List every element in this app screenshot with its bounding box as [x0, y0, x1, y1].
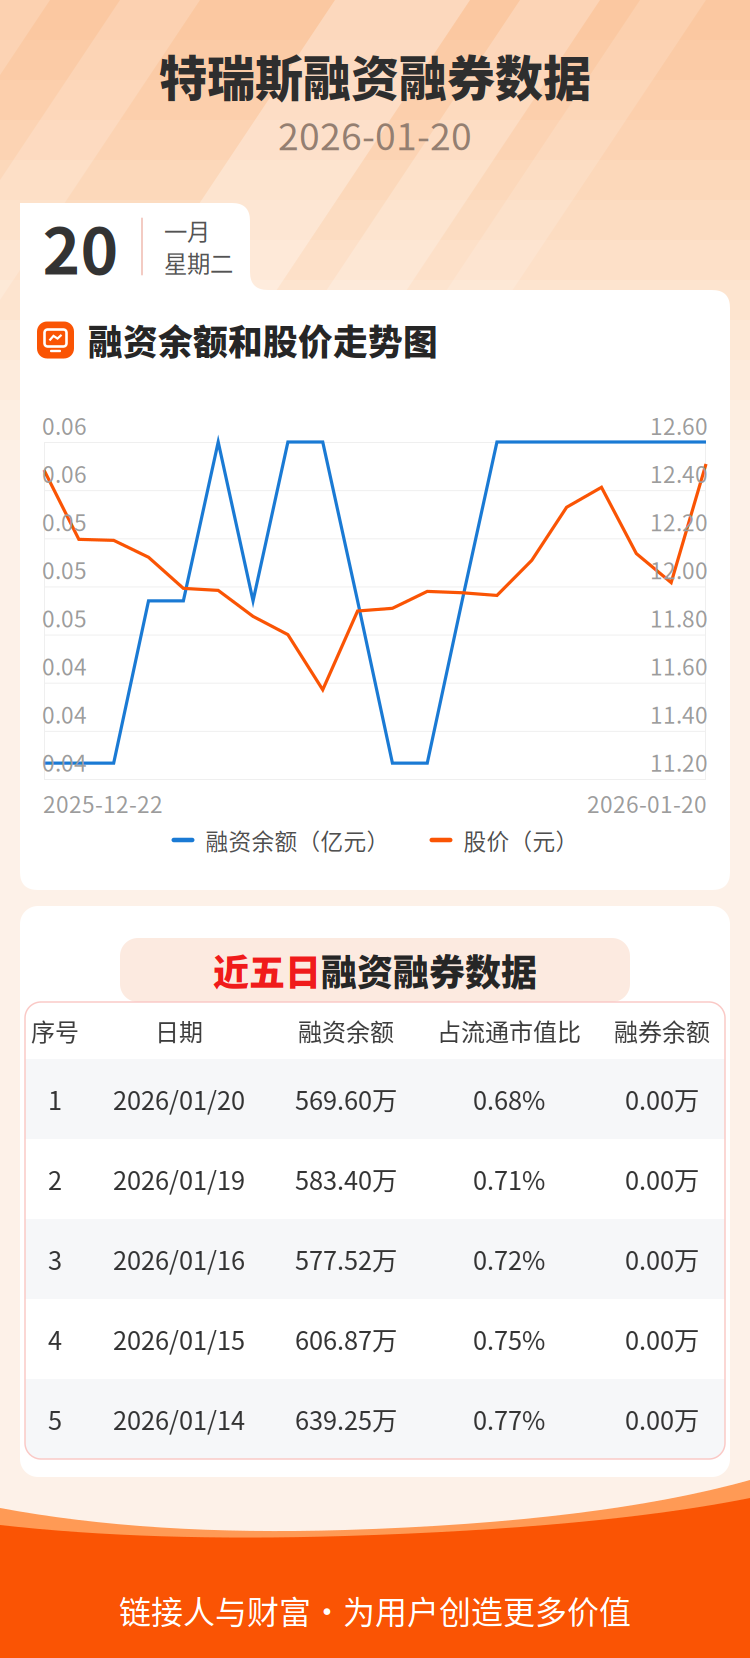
staticText: 2026/01/15 [113, 1321, 245, 1357]
staticText: 1 [48, 1081, 62, 1117]
staticText: 占流通市值比 [437, 1013, 581, 1048]
staticText: 2025-12-22 [43, 787, 163, 819]
staticText: 606.87万 [295, 1321, 397, 1357]
staticText: 0.00万 [625, 1321, 699, 1357]
staticText: 融资余额和股价走势图 [88, 315, 438, 365]
staticText: 12.20 [650, 505, 708, 538]
staticText: 0.05 [42, 601, 87, 634]
staticText: 0.77% [473, 1401, 545, 1437]
staticText: 股价（元） [463, 824, 578, 856]
staticText: 2026-01-20 [587, 787, 707, 819]
staticText: 0.75% [473, 1321, 545, 1357]
staticText: 0.72% [473, 1241, 545, 1277]
staticText: 20 [42, 200, 118, 293]
staticText: 577.52万 [295, 1241, 397, 1277]
staticText: 融资余额 [298, 1013, 394, 1048]
staticText: 融券余额 [614, 1013, 710, 1048]
staticText: 3 [48, 1241, 62, 1277]
staticText: 0.00万 [625, 1161, 699, 1197]
staticText: 日期 [155, 1013, 203, 1048]
staticText: 0.00万 [625, 1241, 699, 1277]
staticText: 11.20 [650, 746, 708, 778]
staticText: 12.60 [650, 409, 708, 441]
staticText: 0.00万 [625, 1401, 699, 1437]
staticText: 星期二 [164, 246, 233, 279]
staticText: 特瑞斯融资融券数据 [159, 40, 591, 110]
staticText: 0.06 [42, 409, 87, 441]
staticText: 一月 [164, 214, 210, 247]
staticText: 12.40 [650, 457, 708, 489]
staticText: 0.68% [473, 1081, 545, 1117]
staticText: 583.40万 [295, 1161, 397, 1197]
staticText: 11.60 [650, 649, 708, 682]
staticText: 2 [48, 1161, 62, 1197]
staticText: 639.25万 [295, 1401, 397, 1437]
staticText: 0.04 [42, 697, 87, 730]
staticText: 2026/01/16 [113, 1241, 245, 1277]
staticText: 569.60万 [295, 1081, 397, 1117]
staticText: 序号 [31, 1013, 79, 1048]
staticText: 2026/01/14 [113, 1401, 245, 1437]
staticText: 2026-01-20 [278, 107, 472, 161]
staticText: 2026/01/20 [113, 1081, 245, 1117]
staticText: 融资余额（亿元） [205, 824, 389, 856]
staticText: 11.40 [650, 697, 708, 730]
staticText: 融资融券数据 [321, 944, 537, 996]
staticText: 2026/01/19 [113, 1161, 245, 1197]
staticText: 0.05 [42, 553, 87, 586]
staticText: 0.06 [42, 457, 87, 489]
staticText: 0.04 [42, 746, 87, 778]
staticText: 0.00万 [625, 1081, 699, 1117]
staticText: 11.80 [650, 601, 708, 634]
staticText: 4 [48, 1321, 62, 1357]
staticText: 0.04 [42, 649, 87, 682]
staticText: 近五日 [213, 944, 321, 996]
staticText: 0.71% [473, 1161, 545, 1197]
staticText: 5 [48, 1401, 62, 1437]
staticText: 链接人与财富·为用户创造更多价值 [119, 1587, 631, 1633]
staticText: 0.05 [42, 505, 87, 538]
staticText: 12.00 [650, 553, 708, 586]
